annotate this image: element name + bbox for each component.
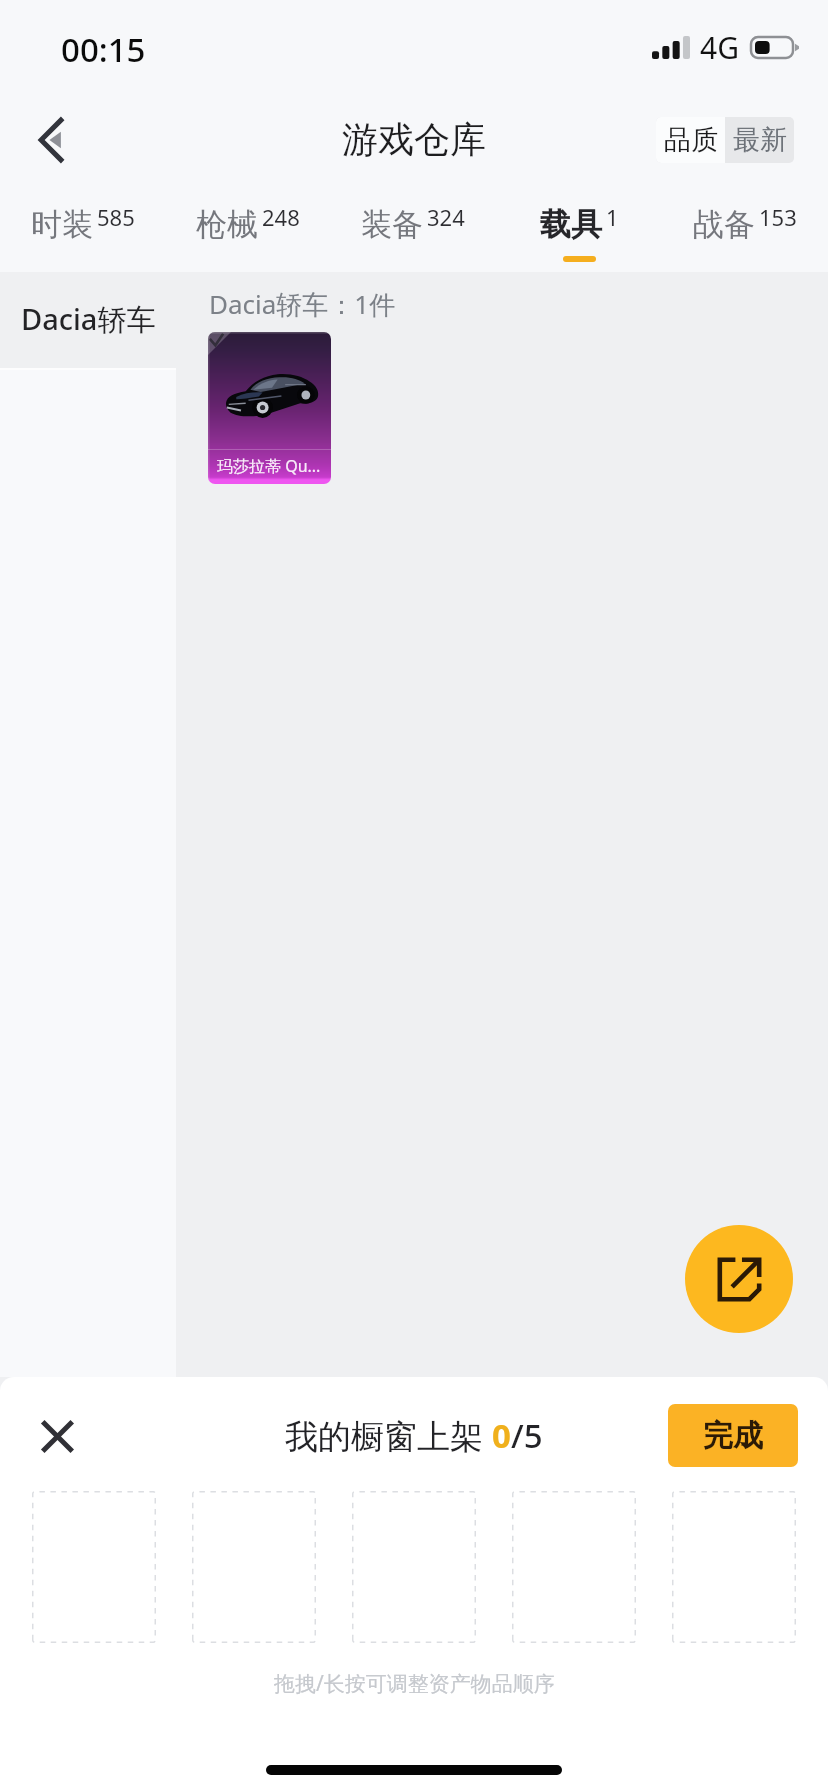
button[interactable]: 枪械: [165, 186, 330, 272]
staticText: Dacia轿车：1件: [209, 286, 396, 322]
staticText: 品质: [664, 123, 718, 157]
staticText: Dacia轿车: [21, 299, 156, 339]
button[interactable]: 玛莎拉蒂 Qu...: [208, 332, 331, 484]
staticText: 0: [492, 1413, 511, 1458]
button[interactable]: Share to showcase: [685, 1225, 793, 1333]
button[interactable]: 最新: [725, 117, 794, 163]
staticText: 时装: [31, 205, 93, 244]
staticText: 585: [97, 202, 135, 232]
staticText: 153: [759, 202, 797, 232]
staticText: /5: [511, 1413, 543, 1458]
staticText: 完成: [703, 1417, 763, 1455]
staticText: 载具: [540, 205, 602, 244]
staticText: 4G: [700, 27, 739, 68]
staticText: 00:15: [61, 27, 146, 72]
staticText: 1: [606, 202, 619, 232]
button[interactable]: 装备: [330, 186, 496, 272]
staticText: 我的橱窗上架: [285, 1413, 492, 1458]
button[interactable]: 时装: [0, 186, 165, 272]
button[interactable]: [352, 1491, 476, 1643]
staticText: 装备: [361, 205, 423, 244]
staticText: 枪械: [196, 205, 258, 244]
button[interactable]: Dacia轿车: [0, 272, 176, 368]
button[interactable]: 完成: [668, 1404, 798, 1467]
button[interactable]: [192, 1491, 316, 1643]
staticText: 游戏仓库: [342, 117, 486, 162]
button[interactable]: [32, 1491, 156, 1643]
staticText: 拖拽/长按可调整资产物品顺序: [274, 1669, 555, 1698]
staticText: 最新: [733, 123, 787, 157]
button[interactable]: 品质: [656, 117, 725, 163]
staticText: 248: [262, 202, 300, 232]
staticText: 战备: [693, 205, 755, 244]
button[interactable]: 战备: [662, 186, 828, 272]
button[interactable]: [512, 1491, 636, 1643]
button[interactable]: [672, 1491, 796, 1643]
button[interactable]: Back: [15, 104, 87, 176]
button[interactable]: 载具: [496, 186, 662, 272]
button[interactable]: Close: [29, 1408, 85, 1464]
staticText: 324: [427, 202, 465, 232]
staticText: 玛莎拉蒂 Qu...: [217, 455, 321, 477]
